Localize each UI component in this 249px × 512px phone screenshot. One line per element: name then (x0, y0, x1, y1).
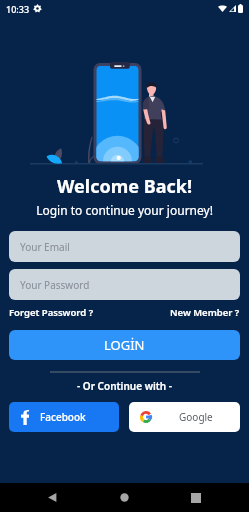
button[interactable]: Google (129, 402, 240, 432)
button[interactable]: Your Email (9, 231, 240, 262)
staticText: 10:33 (6, 3, 30, 15)
button[interactable]: Forget Password ? (9, 306, 94, 319)
staticText: Google (179, 410, 213, 424)
button[interactable]: Home (119, 492, 130, 503)
staticText: Your Email (20, 240, 70, 254)
button[interactable]: Back (47, 492, 58, 503)
staticText: - Or Continue with - (0, 379, 249, 393)
staticText: Facebook (40, 410, 86, 424)
button[interactable]: LOGİN (9, 330, 240, 360)
staticText: LOGİN (104, 336, 145, 354)
staticText: Welcome Back! (0, 174, 249, 199)
staticText: Your Password (20, 278, 90, 292)
button[interactable]: Your Password (9, 269, 240, 300)
button[interactable]: New Member ? (170, 306, 240, 319)
button[interactable]: Facebook (9, 402, 119, 432)
staticText: Login to continue your journey! (0, 202, 249, 218)
